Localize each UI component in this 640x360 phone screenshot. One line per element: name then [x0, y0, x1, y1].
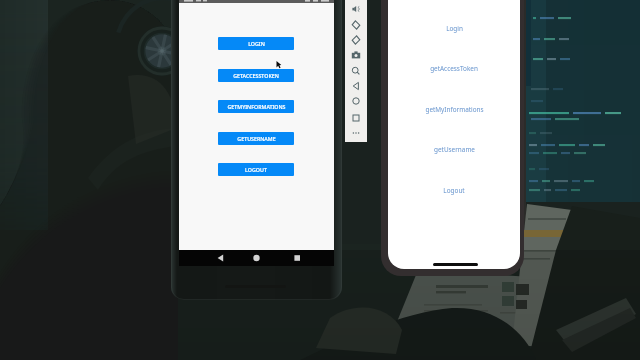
staticText: Logout [443, 186, 465, 195]
staticText: GETUSERNAME [237, 135, 276, 142]
button[interactable]: Back [345, 79, 367, 93]
button[interactable]: getAccessToken [388, 61, 520, 76]
staticText: Login [446, 24, 463, 33]
button[interactable]: More [345, 126, 367, 140]
button[interactable]: Logout [388, 183, 520, 198]
button[interactable]: LOGIN [218, 37, 294, 50]
button[interactable]: getMyInformations [388, 102, 520, 117]
button[interactable]: Rotate right [345, 33, 367, 47]
button[interactable]: getUsername [388, 142, 520, 157]
staticText: GETMYINFORMATIONS [227, 103, 286, 110]
staticText: LOGIN [248, 40, 265, 47]
staticText: getUsername [434, 145, 475, 154]
button[interactable]: GETACCESSTOKEN [218, 69, 294, 82]
button[interactable]: Login [388, 21, 520, 36]
staticText: getMyInformations [425, 105, 484, 114]
button[interactable]: Volume [345, 2, 367, 16]
button[interactable]: Screenshot [345, 48, 367, 62]
button[interactable]: Zoom [345, 64, 367, 78]
staticText: getAccessToken [430, 64, 478, 73]
button[interactable]: Back [206, 250, 234, 266]
button[interactable]: Overview [345, 111, 367, 125]
button[interactable]: GETUSERNAME [218, 132, 294, 145]
staticText: GETACCESSTOKEN [233, 72, 279, 79]
button[interactable]: Home [345, 94, 367, 108]
staticText: LOGOUT [245, 166, 267, 173]
button[interactable]: Recent apps [284, 250, 312, 266]
button[interactable]: Home [243, 250, 271, 266]
button[interactable]: GETMYINFORMATIONS [218, 100, 294, 113]
button[interactable]: Rotate left [345, 18, 367, 32]
button[interactable]: LOGOUT [218, 163, 294, 176]
